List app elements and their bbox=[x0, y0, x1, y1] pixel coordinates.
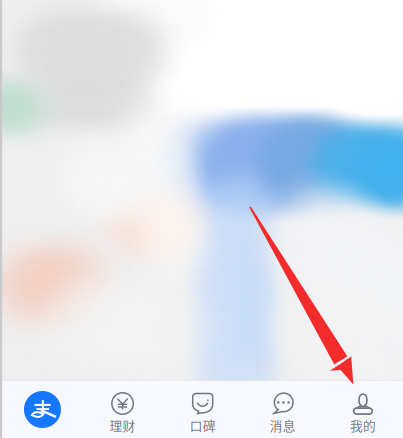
button[interactable]: 我的 bbox=[323, 381, 403, 438]
button[interactable]: 口碑 bbox=[163, 381, 243, 438]
staticText: 理财 bbox=[110, 416, 136, 434]
staticText: 口碑 bbox=[190, 416, 216, 434]
staticText: 消息 bbox=[270, 416, 296, 434]
button[interactable]: 理财 bbox=[82, 381, 163, 438]
staticText: 我的 bbox=[350, 416, 376, 434]
button[interactable]: 消息 bbox=[243, 381, 323, 438]
button[interactable]: 支付宝 首页 bbox=[2, 381, 82, 438]
